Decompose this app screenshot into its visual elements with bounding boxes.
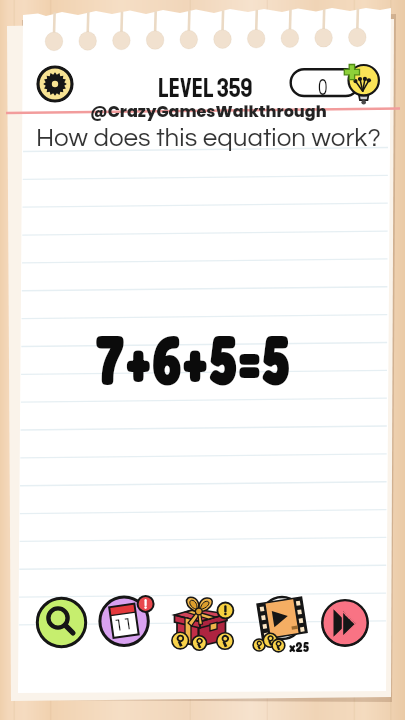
staticText: @CrazyGamesWalkthrough	[90, 100, 327, 122]
button[interactable]: Hints	[286, 60, 382, 108]
staticText: LEVEL 359	[158, 71, 253, 105]
button[interactable]: Search	[35, 596, 88, 649]
button[interactable]: Watch ad for hints	[250, 596, 320, 654]
staticText: 11	[113, 615, 134, 635]
staticText: How does this equation work?	[36, 125, 381, 152]
button[interactable]: Gift	[170, 593, 236, 653]
button[interactable]: Skip level	[321, 599, 369, 647]
staticText: 7+6+5=5	[94, 317, 291, 400]
staticText: x25	[289, 638, 310, 655]
button[interactable]: Settings	[36, 65, 74, 103]
staticText: 0	[318, 75, 328, 100]
button[interactable]: Daily reward	[97, 594, 155, 652]
